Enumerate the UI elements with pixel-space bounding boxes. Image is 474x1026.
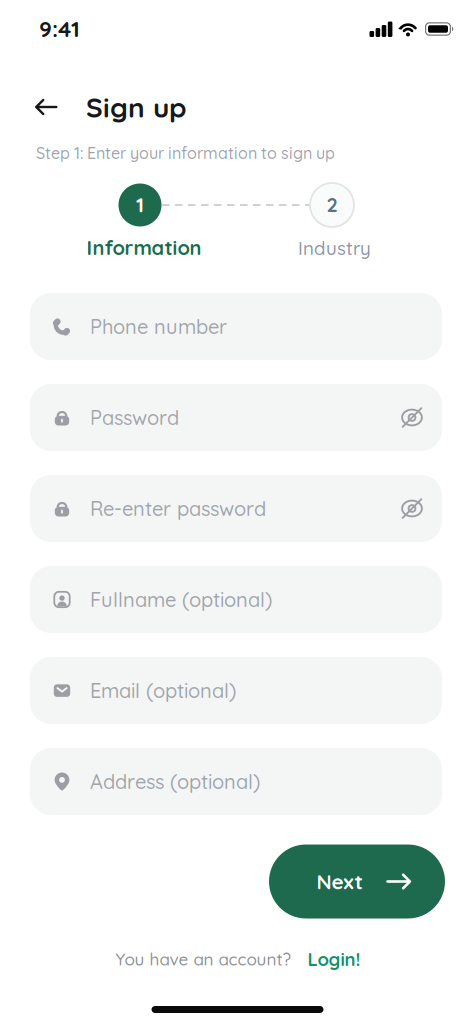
button[interactable]: Show password (400, 497, 423, 520)
button[interactable]: Phone number (30, 293, 442, 360)
button[interactable]: Email (optional) (30, 657, 442, 724)
staticText: Email (optional) (90, 678, 236, 703)
staticText: Address (optional) (90, 769, 260, 794)
staticText: Password (90, 405, 179, 430)
staticText: 1 (136, 192, 144, 217)
staticText: Industry (298, 236, 371, 260)
staticText: You have an account? (115, 948, 291, 970)
button[interactable]: Password (30, 384, 442, 451)
button[interactable]: Login! (307, 947, 360, 970)
staticText: Information (86, 235, 201, 260)
staticText: 2 (326, 192, 337, 217)
button[interactable]: Back (24, 85, 68, 129)
staticText: Login! (307, 947, 360, 970)
staticText: Re-enter password (90, 496, 266, 521)
button[interactable]: Fullname (optional) (30, 566, 442, 633)
staticText: Sign up (86, 89, 187, 124)
button[interactable]: Re-enter password (30, 475, 442, 542)
staticText: Fullname (optional) (90, 587, 272, 612)
button[interactable]: Next (269, 844, 445, 918)
staticText: 9:41 (39, 14, 80, 43)
button[interactable]: Show password (400, 406, 423, 429)
staticText: Step 1: Enter your information to sign u… (36, 143, 335, 163)
staticText: Next (316, 869, 362, 894)
staticText: Phone number (90, 314, 227, 339)
button[interactable]: Address (optional) (30, 748, 442, 815)
